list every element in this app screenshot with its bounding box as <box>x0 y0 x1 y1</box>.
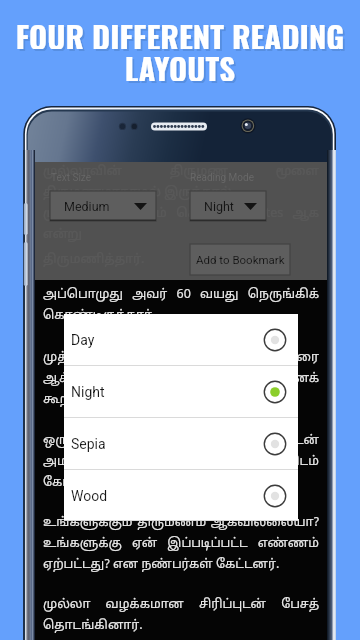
button[interactable]: Night <box>190 191 266 221</box>
staticText: அப்பொமுது அவர் 60 வயது நெருங்கிக் கொண்டி… <box>43 287 319 357</box>
staticText: Night <box>71 384 105 400</box>
button[interactable]: Night <box>64 366 298 418</box>
staticText: Sepia <box>71 436 106 452</box>
staticText: Add to Bookmark <box>196 253 285 266</box>
staticText: முல்லாவின் திருமண மூளை திருமணமாகாமல் இரு… <box>43 164 319 234</box>
other: Open Night options <box>244 203 257 210</box>
staticText: ஒரு நாள் அவரது நண்பர்கள் உடன் அமர்ந்து ப… <box>43 433 319 503</box>
button[interactable]: Day <box>64 314 298 366</box>
staticText: முத்தர்கள் அனைவரும் அவரை ஆச்சரியத்துடன் … <box>43 350 319 420</box>
button[interactable]: Wood <box>64 470 298 521</box>
staticText: LAYOUTS <box>2 47 360 83</box>
staticText: Reading Mode <box>190 172 254 184</box>
staticText: முல்லா வழக்கமான சிரிப்புடன் பேசத் தொடங்க… <box>43 597 319 640</box>
button[interactable]: Add to Bookmark <box>190 244 290 275</box>
button[interactable]: Sepia <box>64 418 298 470</box>
staticText: திருமணித்தார். <box>43 252 319 322</box>
staticText: முல்லா மறுமணம் செய்ய Favorites ஆக என்று <box>43 206 319 276</box>
other: Open Medium options <box>134 203 147 210</box>
staticText: FOUR DIFFERENT READING <box>2 15 360 51</box>
staticText: உங்களுக்கும் திருமணம் ஆகவில்லையா? உங்களு… <box>43 515 319 585</box>
staticText: Medium <box>64 199 110 214</box>
staticText: FOUR DIFFERENT READING <box>0 13 360 49</box>
staticText: LAYOUTS <box>0 45 360 81</box>
staticText: Text Size <box>51 172 92 184</box>
button[interactable]: Medium <box>50 191 156 221</box>
staticText: Wood <box>71 488 108 504</box>
staticText: Night <box>204 199 234 214</box>
staticText: Day <box>71 332 95 348</box>
